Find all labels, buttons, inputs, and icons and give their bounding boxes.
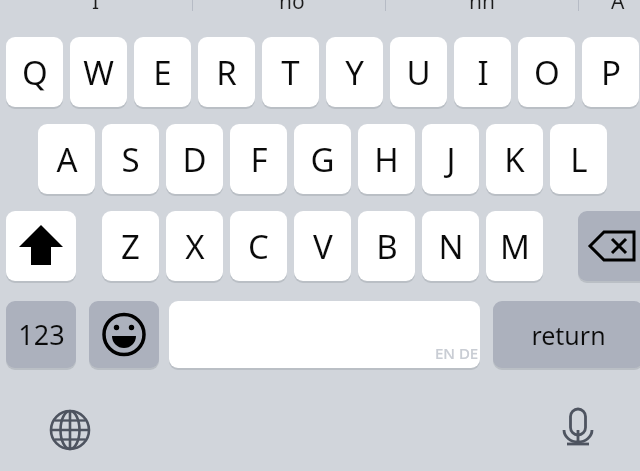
staticText: J	[446, 137, 456, 182]
button[interactable]: Space	[169, 301, 480, 368]
staticText: B	[376, 224, 398, 269]
button[interactable]: P	[582, 37, 639, 107]
staticText: V	[313, 224, 333, 269]
button[interactable]: I	[454, 37, 511, 107]
button[interactable]: A	[38, 124, 95, 194]
staticText: F	[250, 137, 268, 182]
staticText: I	[477, 50, 489, 95]
staticText: P	[601, 50, 621, 95]
button[interactable]: J	[422, 124, 479, 194]
staticText: 123	[18, 316, 65, 353]
button[interactable]: V	[294, 211, 351, 281]
button[interactable]: N	[422, 211, 479, 281]
button[interactable]: Q	[6, 37, 63, 107]
staticText: K	[504, 137, 525, 182]
staticText: EN DE	[435, 343, 479, 363]
staticText: X	[185, 224, 205, 269]
staticText: G	[310, 137, 335, 182]
button[interactable]: O	[518, 37, 575, 107]
staticText: A	[56, 137, 78, 182]
button[interactable]: F	[230, 124, 287, 194]
staticText: Q	[22, 50, 48, 95]
staticText: return	[531, 318, 606, 352]
staticText: no	[279, 0, 305, 9]
button[interactable]: 123	[6, 301, 76, 368]
staticText: N	[438, 224, 464, 269]
button[interactable]: R	[198, 37, 255, 107]
staticText: T	[281, 50, 300, 95]
staticText: W	[83, 50, 114, 95]
button[interactable]: Shift	[6, 211, 76, 281]
button[interactable]: return	[493, 301, 640, 368]
button[interactable]: EN DE	[435, 343, 479, 363]
button[interactable]: C	[230, 211, 287, 281]
staticText: O	[534, 50, 560, 95]
staticText: A	[611, 0, 625, 9]
button[interactable]: Y	[326, 37, 383, 107]
staticText: M	[500, 224, 530, 269]
button[interactable]: Z	[102, 211, 159, 281]
button[interactable]: M	[486, 211, 543, 281]
button[interactable]: L	[550, 124, 607, 194]
staticText: nn	[469, 0, 495, 9]
staticText: U	[406, 50, 431, 95]
staticText: L	[570, 137, 588, 182]
button[interactable]: H	[358, 124, 415, 194]
staticText: Z	[121, 224, 140, 269]
button[interactable]: G	[294, 124, 351, 194]
button[interactable]: T	[262, 37, 319, 107]
button[interactable]: K	[486, 124, 543, 194]
staticText: Y	[345, 50, 364, 95]
button[interactable]: D	[166, 124, 223, 194]
button[interactable]: X	[166, 211, 223, 281]
staticText: S	[121, 137, 140, 182]
staticText: R	[216, 50, 237, 95]
button[interactable]: W	[70, 37, 127, 107]
button[interactable]: Emoji	[89, 301, 159, 368]
button[interactable]: Dictation	[546, 396, 610, 460]
staticText: D	[182, 137, 207, 182]
staticText: E	[153, 50, 172, 95]
button[interactable]: S	[102, 124, 159, 194]
staticText: I	[92, 0, 100, 9]
button[interactable]: E	[134, 37, 191, 107]
staticText: C	[248, 224, 269, 269]
button[interactable]: B	[358, 211, 415, 281]
button[interactable]: Backspace	[578, 211, 640, 281]
button[interactable]: Switch keyboard language	[38, 398, 102, 462]
staticText: H	[374, 137, 399, 182]
button[interactable]: U	[390, 37, 447, 107]
